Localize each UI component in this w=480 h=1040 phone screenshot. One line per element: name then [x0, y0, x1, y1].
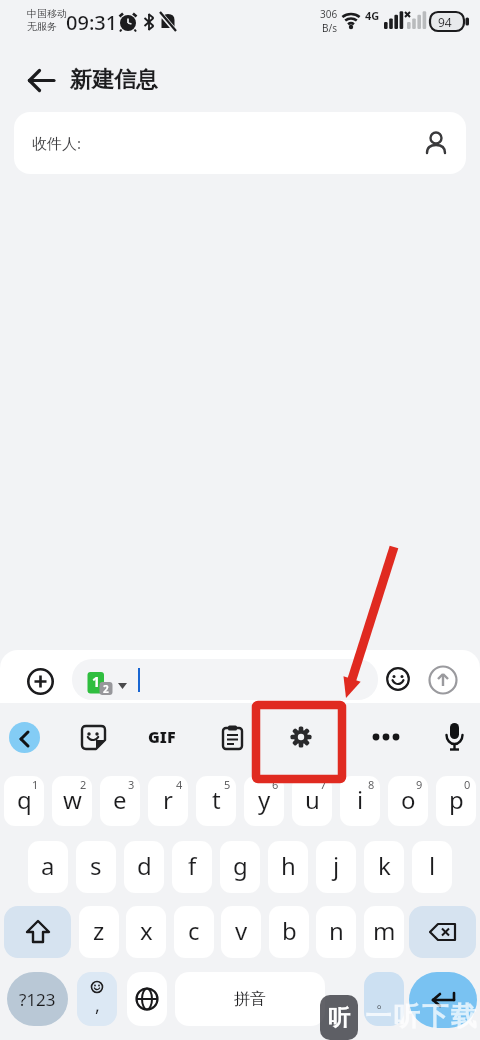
- staticText: 新建信息: [70, 66, 158, 94]
- staticText: n: [329, 914, 344, 947]
- button[interactable]: [409, 906, 476, 958]
- staticText: 6: [272, 777, 279, 792]
- staticText: b: [282, 914, 297, 947]
- button[interactable]: ?123: [7, 972, 68, 1026]
- staticText: 306: [320, 7, 338, 21]
- staticText: k: [378, 849, 391, 882]
- button[interactable]: m: [364, 906, 404, 958]
- button[interactable]: 收件人:: [14, 112, 466, 174]
- staticText: 09:31: [66, 9, 118, 36]
- button[interactable]: [220, 725, 245, 750]
- staticText: r: [163, 783, 173, 816]
- staticText: w: [63, 783, 82, 816]
- staticText: 收件人:: [32, 133, 82, 153]
- button[interactable]: [127, 972, 167, 1026]
- button[interactable]: k: [364, 841, 404, 893]
- button[interactable]: [27, 668, 54, 695]
- button[interactable]: [80, 724, 107, 751]
- staticText: 无服务: [27, 20, 57, 33]
- staticText: B/s: [322, 21, 338, 35]
- staticText: i: [357, 783, 364, 816]
- button[interactable]: s: [76, 841, 116, 893]
- button[interactable]: 拼音: [175, 972, 325, 1026]
- staticText: 9: [416, 777, 423, 792]
- button[interactable]: [4, 906, 71, 958]
- staticText: g: [233, 849, 248, 882]
- staticText: 1: [92, 672, 101, 691]
- staticText: f: [188, 849, 197, 882]
- button[interactable]: [409, 972, 477, 1028]
- staticText: a: [41, 849, 55, 882]
- staticText: 2: [80, 777, 87, 792]
- staticText: 5: [224, 777, 231, 792]
- staticText: 听: [328, 1004, 350, 1032]
- staticText: 中国移动: [27, 7, 67, 20]
- button[interactable]: [443, 722, 466, 752]
- button[interactable]: t: [196, 776, 236, 826]
- button[interactable]: b: [269, 906, 309, 958]
- button[interactable]: w: [52, 776, 92, 826]
- button[interactable]: [428, 665, 458, 695]
- button[interactable]: [9, 722, 40, 753]
- button[interactable]: j: [316, 841, 356, 893]
- staticText: v: [235, 914, 248, 947]
- button[interactable]: o: [388, 776, 428, 826]
- staticText: m: [373, 914, 396, 947]
- staticText: c: [188, 914, 200, 947]
- staticText: 2: [103, 682, 109, 696]
- button[interactable]: q: [4, 776, 44, 826]
- staticText: d: [137, 849, 152, 882]
- button[interactable]: ,: [77, 972, 117, 1026]
- button[interactable]: v: [221, 906, 261, 958]
- button[interactable]: l: [412, 841, 452, 893]
- staticText: o: [401, 783, 416, 816]
- staticText: s: [90, 849, 102, 882]
- staticText: y: [258, 783, 271, 816]
- staticText: 3: [128, 777, 135, 792]
- staticText: x: [140, 914, 153, 947]
- staticText: q: [17, 783, 32, 816]
- button[interactable]: x: [126, 906, 166, 958]
- button[interactable]: d: [124, 841, 164, 893]
- staticText: 4: [176, 777, 183, 792]
- button[interactable]: u: [292, 776, 332, 826]
- button[interactable]: 1: [72, 659, 378, 700]
- button[interactable]: a: [28, 841, 68, 893]
- button[interactable]: z: [79, 906, 119, 958]
- staticText: e: [113, 783, 127, 816]
- button[interactable]: [290, 726, 312, 748]
- staticText: 1: [32, 777, 39, 792]
- button[interactable]: p: [436, 776, 476, 826]
- staticText: j: [333, 849, 340, 882]
- button[interactable]: [28, 67, 55, 94]
- staticText: t: [212, 783, 221, 816]
- staticText: l: [429, 849, 436, 882]
- button[interactable]: g: [220, 841, 260, 893]
- staticText: p: [449, 783, 464, 816]
- staticText: 一听下载: [364, 1000, 478, 1033]
- button[interactable]: 。: [364, 972, 404, 1026]
- staticText: u: [305, 783, 320, 816]
- staticText: 4G: [365, 8, 380, 23]
- button[interactable]: [370, 731, 402, 743]
- staticText: 94: [438, 14, 452, 30]
- button[interactable]: y: [244, 776, 284, 826]
- button[interactable]: [386, 667, 410, 691]
- button[interactable]: h: [268, 841, 308, 893]
- staticText: z: [93, 914, 105, 947]
- staticText: 。: [376, 992, 392, 1012]
- button[interactable]: e: [100, 776, 140, 826]
- button[interactable]: i: [340, 776, 380, 826]
- staticText: 7: [320, 777, 327, 792]
- button[interactable]: c: [174, 906, 214, 958]
- staticText: 拼音: [234, 989, 266, 1009]
- staticText: 0: [464, 777, 471, 792]
- button[interactable]: GIF: [148, 726, 176, 748]
- button[interactable]: n: [316, 906, 356, 958]
- staticText: ?123: [19, 988, 56, 1011]
- staticText: 8: [368, 777, 375, 792]
- button[interactable]: f: [172, 841, 212, 893]
- staticText: h: [281, 849, 296, 882]
- staticText: ,: [95, 993, 100, 1018]
- button[interactable]: r: [148, 776, 188, 826]
